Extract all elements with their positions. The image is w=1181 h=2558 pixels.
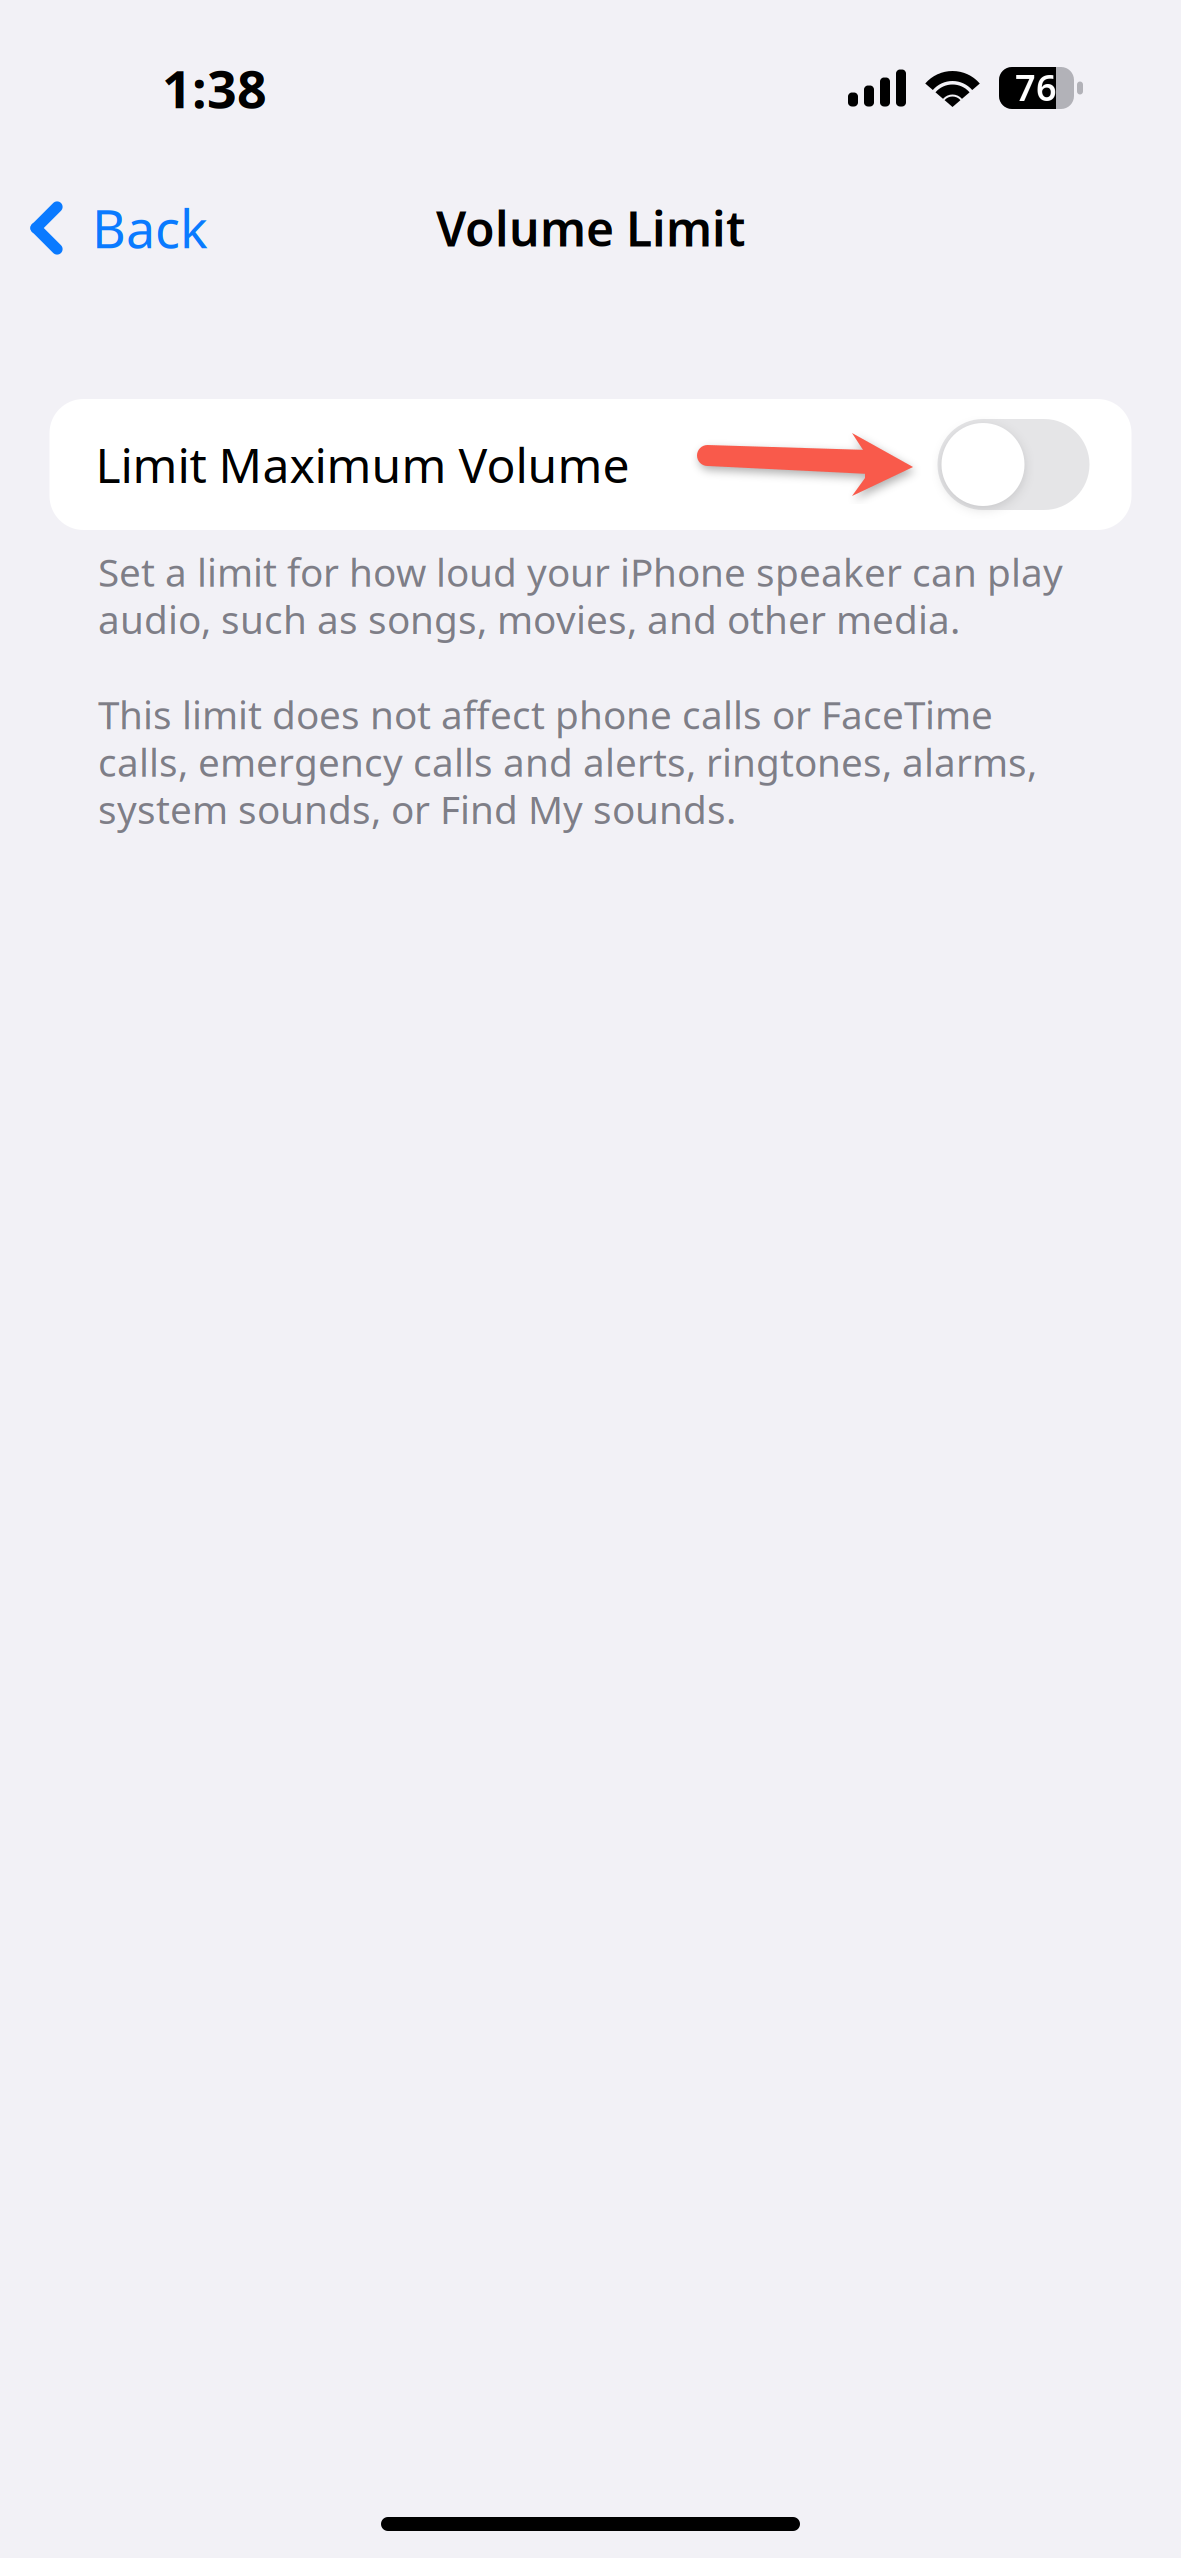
staticText: 76 xyxy=(1015,63,1057,111)
staticText: Limit Maximum Volume xyxy=(95,433,629,496)
staticText: 1:38 xyxy=(162,53,267,123)
staticText: Set a limit for how loud your iPhone spe… xyxy=(98,546,1063,645)
staticText: This limit does not affect phone calls o… xyxy=(98,689,1037,835)
button[interactable]: Limit Maximum Volume xyxy=(49,399,1131,530)
button[interactable]: Back xyxy=(0,177,230,279)
button[interactable]: Limit Maximum Volume, off xyxy=(937,419,1089,510)
staticText: Volume Limit xyxy=(436,196,745,260)
staticText: Back xyxy=(92,193,208,263)
